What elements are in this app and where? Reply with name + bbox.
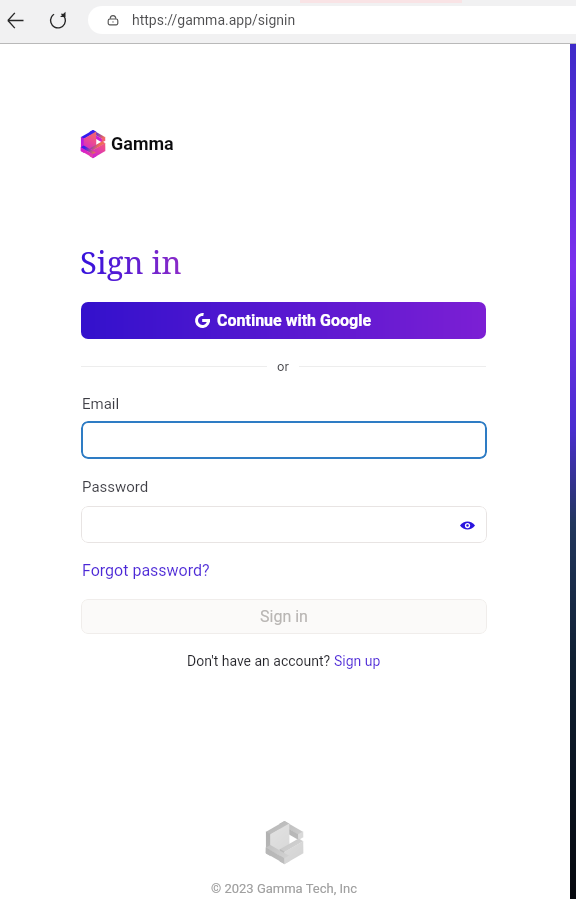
staticText: © 2023 Gamma Tech, Inc — [211, 881, 357, 896]
button[interactable]: Continue with Google — [81, 302, 486, 339]
staticText: Email — [82, 395, 120, 413]
button[interactable]: Forgot password? — [82, 561, 210, 580]
staticText: Password — [82, 478, 149, 496]
staticText: Sign in — [80, 241, 182, 283]
button[interactable]: https://gamma.app/signin — [88, 6, 576, 34]
staticText: https://gamma.app/signin — [132, 12, 296, 28]
staticText: Gamma — [111, 133, 174, 154]
button[interactable] — [81, 421, 487, 459]
staticText: Sign in — [260, 607, 308, 626]
button[interactable]: Show password — [456, 514, 478, 536]
button[interactable]: Reload — [44, 6, 72, 34]
staticText: or — [277, 359, 289, 374]
staticText: Continue with Google — [217, 311, 372, 330]
button[interactable]: Sign up — [334, 653, 381, 669]
button[interactable]: Sign in — [81, 599, 487, 634]
staticText: Don't have an account? — [187, 653, 334, 669]
button[interactable]: Back — [1, 6, 29, 34]
button[interactable]: Show password — [81, 506, 487, 543]
